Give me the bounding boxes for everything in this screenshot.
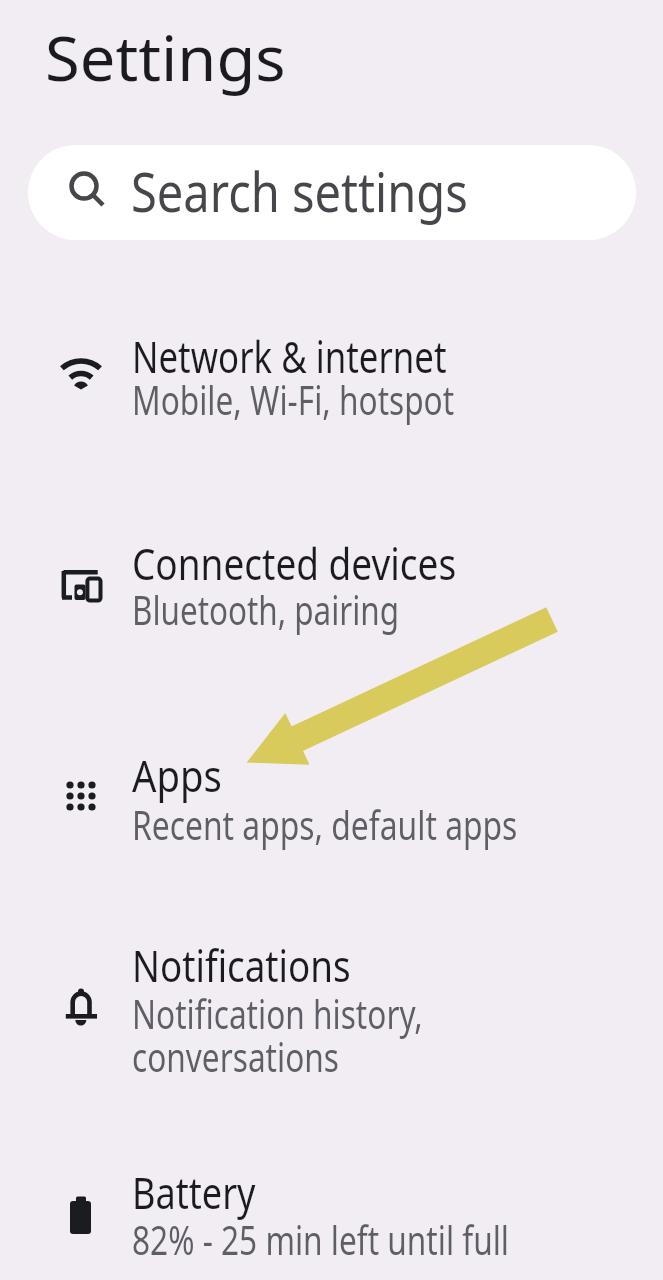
staticText: Bluetooth, pairing	[132, 582, 400, 636]
button[interactable]: Battery	[0, 1148, 663, 1280]
staticText: conversations	[132, 1029, 339, 1083]
staticText: Network & internet	[132, 327, 447, 386]
button[interactable]: Search settings	[28, 145, 636, 240]
staticText: Connected devices	[132, 534, 456, 593]
button[interactable]: Network & internet	[0, 310, 663, 440]
staticText: Search settings	[131, 153, 468, 228]
staticText: Mobile, Wi-Fi, hotspot	[132, 372, 454, 426]
staticText: Battery	[132, 1163, 256, 1222]
button[interactable]: Notifications	[0, 918, 663, 1088]
staticText: Settings	[45, 15, 286, 99]
staticText: Notifications	[132, 936, 351, 995]
staticText: 82% - 25 min left until full	[132, 1212, 510, 1266]
staticText: Apps	[132, 746, 222, 805]
staticText: Recent apps, default apps	[132, 797, 518, 851]
staticText: Notification history,	[132, 986, 423, 1040]
button[interactable]: Connected devices	[0, 518, 663, 648]
button[interactable]: Apps	[0, 728, 663, 858]
